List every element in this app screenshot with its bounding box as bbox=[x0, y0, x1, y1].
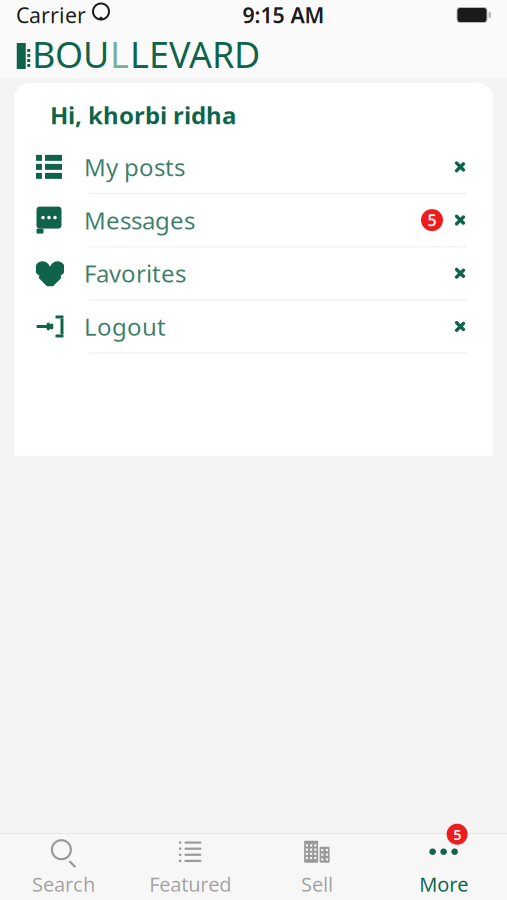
staticText: LEVARD bbox=[130, 30, 260, 78]
button[interactable]: Sell bbox=[253, 834, 380, 900]
staticText: More bbox=[419, 871, 468, 897]
button[interactable]: Favorites bbox=[14, 247, 493, 300]
staticText: Hi, khorbi ridha bbox=[50, 99, 236, 131]
staticText: Carrier bbox=[16, 1, 86, 29]
staticText: My posts bbox=[84, 151, 185, 183]
staticText: BOU bbox=[32, 30, 109, 78]
button[interactable]: 5 bbox=[380, 834, 507, 900]
staticText: Messages bbox=[84, 204, 195, 236]
staticText: 9:15 AM bbox=[242, 1, 324, 29]
staticText: 5 bbox=[427, 209, 436, 231]
staticText: Search bbox=[32, 871, 95, 897]
button[interactable]: Messages bbox=[14, 194, 493, 247]
button[interactable]: Featured bbox=[127, 834, 254, 900]
button[interactable]: My posts bbox=[14, 141, 493, 194]
staticText: L bbox=[110, 30, 129, 78]
button[interactable]: Logout bbox=[14, 300, 493, 354]
staticText: Favorites bbox=[84, 257, 186, 289]
staticText: Featured bbox=[149, 871, 231, 897]
button[interactable]: Search bbox=[0, 834, 127, 900]
staticText: Sell bbox=[301, 871, 333, 897]
staticText: 5 bbox=[453, 824, 461, 844]
staticText: Logout bbox=[84, 310, 166, 342]
